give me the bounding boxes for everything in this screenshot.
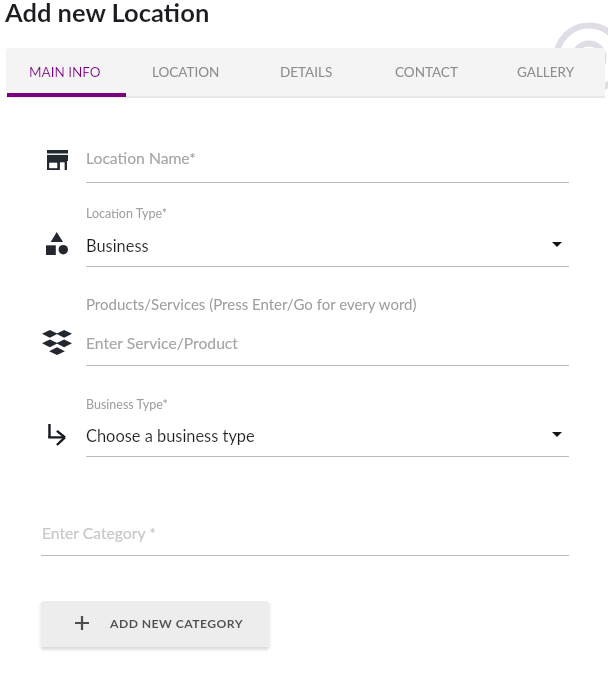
- button[interactable]: CONTACT: [366, 48, 486, 96]
- staticText: CONTACT: [395, 64, 458, 80]
- staticText: GALLERY: [517, 64, 575, 80]
- staticText: MAIN INFO: [29, 64, 101, 80]
- staticText: Enter Service/Product: [86, 334, 238, 353]
- staticText: Location Type*: [86, 206, 168, 221]
- staticText: Products/Services (Press Enter/Go for ev…: [86, 295, 417, 313]
- staticText: Choose a business type: [86, 426, 255, 446]
- staticText: LOCATION: [152, 64, 220, 80]
- button[interactable]: GALLERY: [486, 48, 605, 96]
- staticText: Business Type*: [86, 397, 168, 412]
- staticText: Business: [86, 236, 149, 256]
- button[interactable]: LOCATION: [126, 48, 246, 96]
- button[interactable]: Open dropdown: [552, 432, 562, 437]
- button[interactable]: DETAILS: [246, 48, 366, 96]
- staticText: ADD NEW CATEGORY: [110, 616, 244, 631]
- staticText: Location Name*: [86, 149, 196, 168]
- button[interactable]: MAIN INFO: [6, 48, 125, 96]
- button[interactable]: ADD NEW CATEGORY: [41, 601, 269, 647]
- staticText: Enter Category *: [42, 524, 156, 543]
- button[interactable]: Open dropdown: [552, 242, 562, 247]
- staticText: DETAILS: [280, 64, 333, 80]
- staticText: Add new Location: [5, 0, 210, 28]
